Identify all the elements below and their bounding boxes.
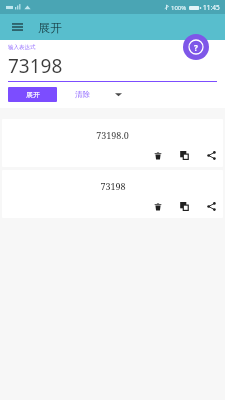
button[interactable]: Copy xyxy=(178,200,191,213)
staticText: 清除 xyxy=(75,90,90,99)
button[interactable]: Share xyxy=(205,149,218,162)
button[interactable]: Copy xyxy=(178,149,191,162)
staticText: 73198 xyxy=(100,180,126,192)
staticText: 11:45 xyxy=(203,3,220,12)
staticText: 73198 xyxy=(8,53,63,79)
button[interactable]: Menu xyxy=(8,18,26,36)
staticText: ? xyxy=(194,42,198,53)
button[interactable]: Share xyxy=(205,200,218,213)
staticText: 输入表达式 xyxy=(8,44,36,51)
button[interactable]: Delete xyxy=(151,149,164,162)
staticText: 展开 xyxy=(38,20,62,35)
staticText: 展开 xyxy=(26,90,40,99)
button[interactable]: 73198.0 xyxy=(2,119,223,167)
staticText: 73198.0 xyxy=(96,129,129,141)
staticText: 100% xyxy=(171,4,187,12)
button[interactable]: Delete xyxy=(151,200,164,213)
button[interactable]: 73198 xyxy=(2,170,223,218)
button[interactable]: 展开 xyxy=(8,87,57,102)
button[interactable]: Help xyxy=(183,34,209,60)
button[interactable]: 清除 xyxy=(75,90,122,99)
